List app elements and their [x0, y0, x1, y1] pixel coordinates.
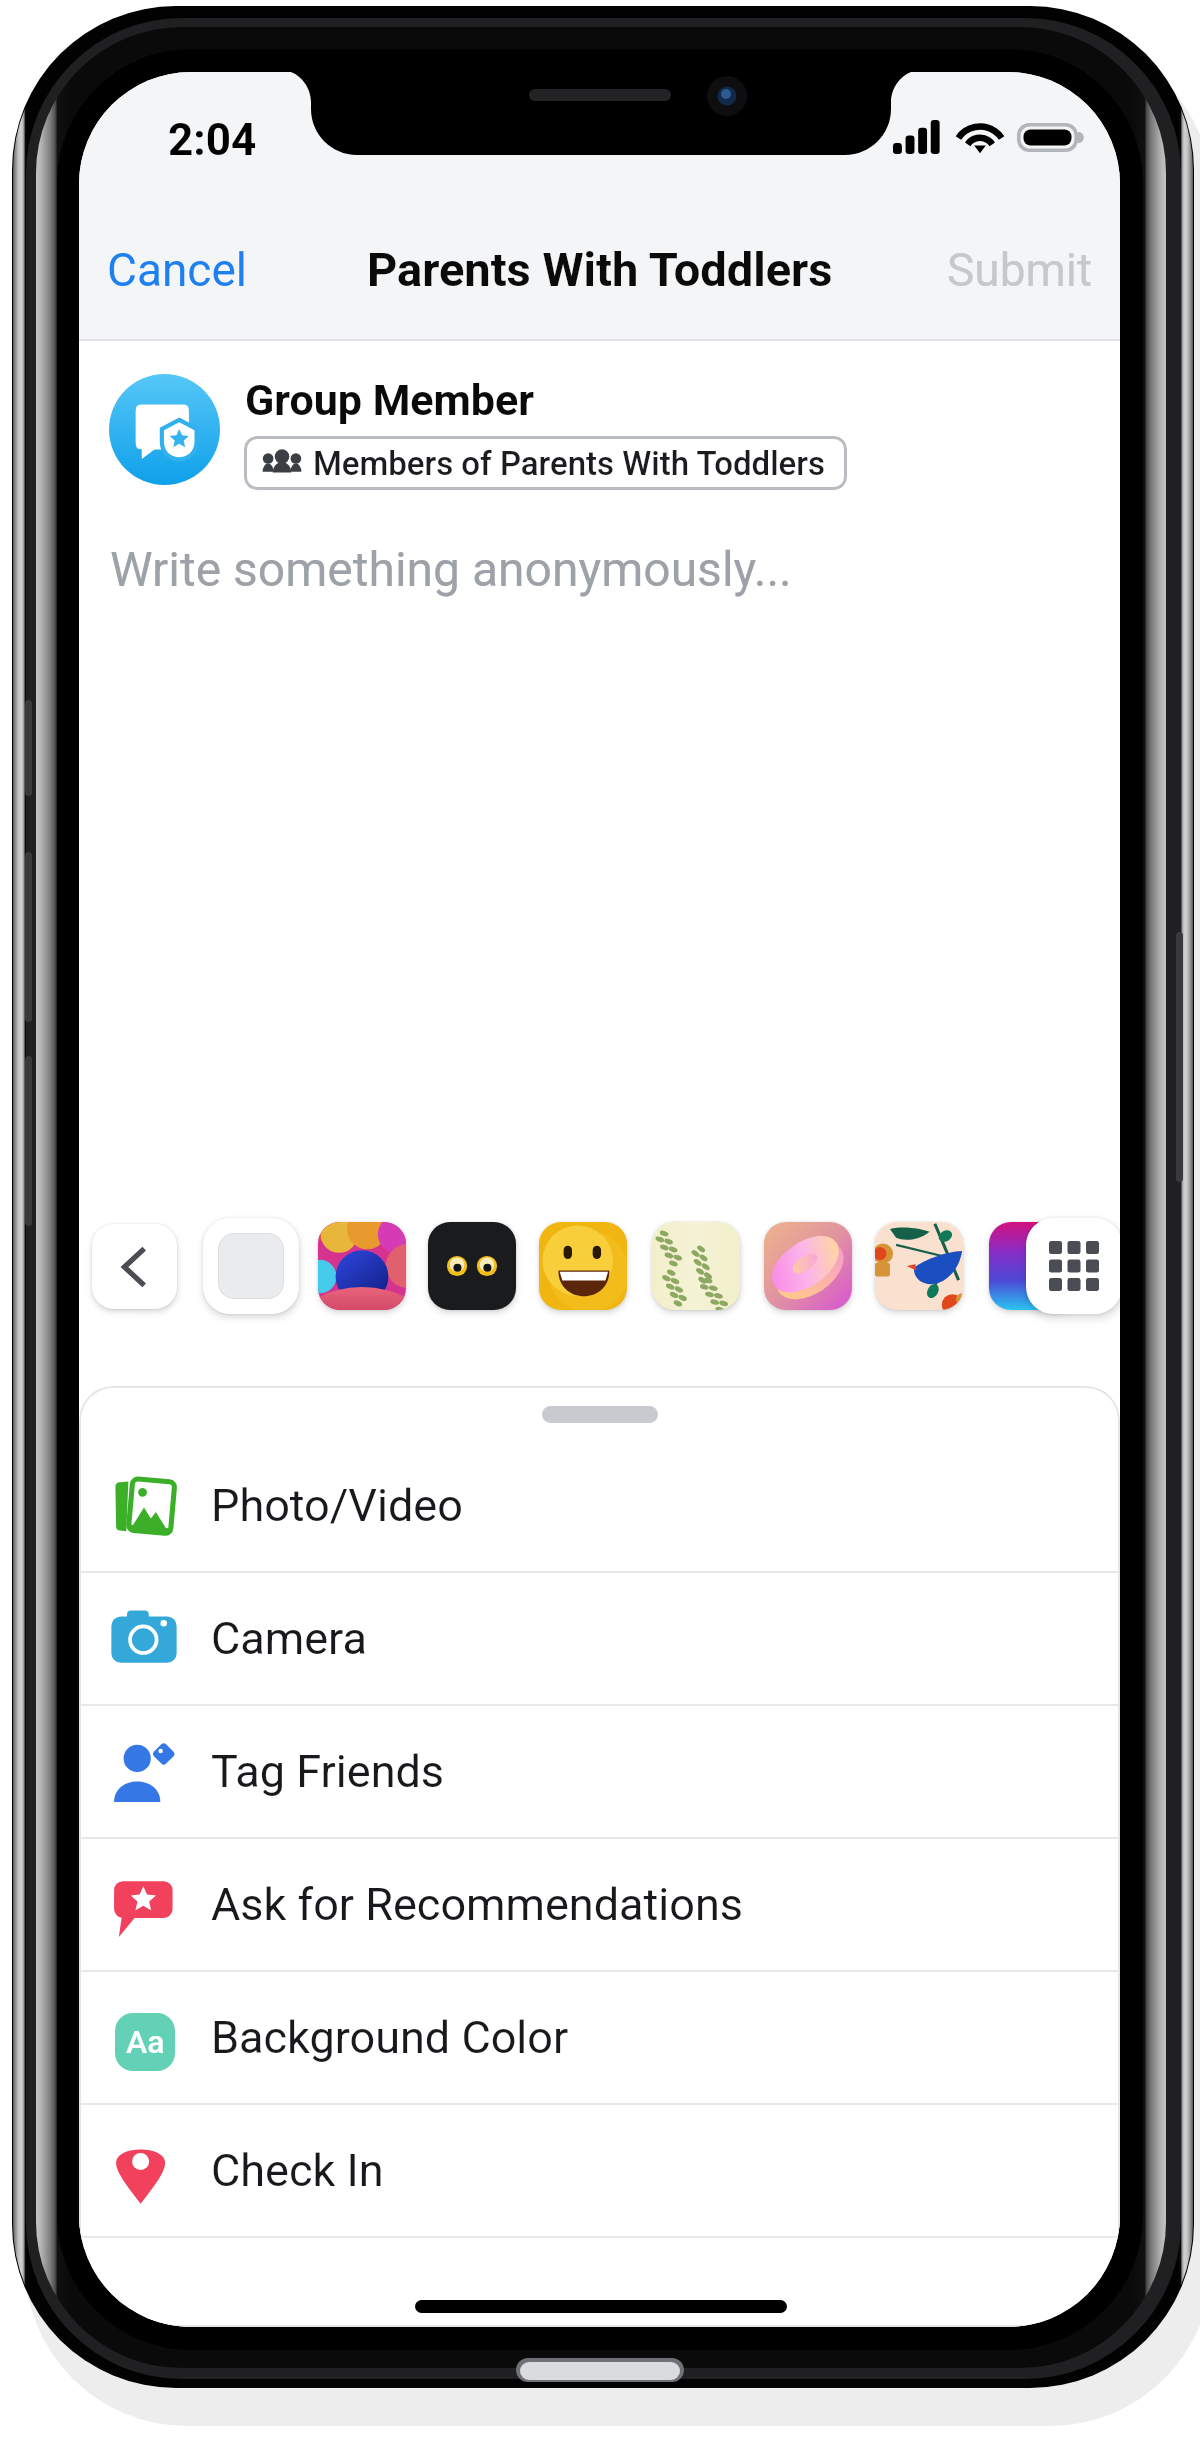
staticText: Write something anonymously...	[110, 541, 792, 597]
staticText: Submit	[947, 243, 1093, 297]
staticText: Background Color	[211, 2011, 569, 2064]
staticText: Tag Friends	[211, 1745, 445, 1798]
staticText: Check In	[211, 2144, 384, 2197]
button[interactable]: Donut background	[764, 1222, 852, 1310]
staticText: Photo/Video	[211, 1479, 463, 1532]
button[interactable]: Balloons background	[318, 1222, 406, 1310]
button[interactable]: Eyes background	[428, 1222, 516, 1310]
button[interactable]: Camera	[79, 1573, 1120, 1704]
button[interactable]: No background	[203, 1218, 299, 1314]
button[interactable]: Check In	[79, 2105, 1120, 2236]
button[interactable]: More backgrounds	[1026, 1218, 1120, 1314]
button[interactable]: Smiley background	[539, 1222, 627, 1310]
button[interactable]: Bird background	[875, 1222, 963, 1310]
button[interactable]: Members of Parents With Toddlers	[244, 436, 847, 490]
staticText: Members of Parents With Toddlers	[313, 444, 825, 483]
button[interactable]: Back	[92, 1224, 177, 1309]
staticText: Cancel	[107, 243, 248, 297]
button[interactable]: Aa	[79, 1972, 1120, 2103]
staticText: Aa	[126, 2023, 165, 2061]
staticText: Ask for Recommendations	[211, 1878, 743, 1931]
button[interactable]: Submit	[919, 219, 1120, 321]
button[interactable]: Leaves background	[652, 1222, 740, 1310]
staticText: Camera	[211, 1612, 367, 1665]
button[interactable]: Gradient background	[989, 1222, 1077, 1310]
button[interactable]: Photo/Video	[79, 1440, 1120, 1571]
staticText: 2:04	[168, 114, 257, 166]
button[interactable]: Ask for Recommendations	[79, 1839, 1120, 1970]
button[interactable]: Cancel	[79, 219, 276, 321]
button[interactable]: Tag Friends	[79, 1706, 1120, 1837]
staticText: Group Member	[245, 375, 534, 425]
staticText: Parents With Toddlers	[367, 242, 833, 297]
